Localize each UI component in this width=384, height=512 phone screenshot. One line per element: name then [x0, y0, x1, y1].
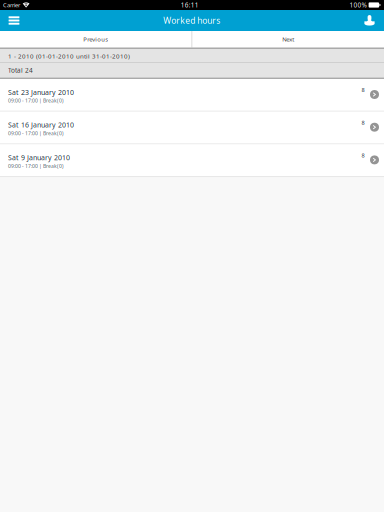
- staticText: Sat 23 January 2010: [8, 87, 74, 97]
- staticText: 8: [361, 151, 364, 159]
- staticText: 16:11: [181, 1, 199, 9]
- button[interactable]: Sat 16 January 2010: [0, 112, 384, 144]
- staticText: 09:00 - 17:00 | Break(0): [8, 162, 64, 169]
- staticText: Sat 16 January 2010: [8, 120, 74, 130]
- staticText: Carrier: [3, 1, 20, 9]
- button[interactable]: Previous: [0, 31, 191, 47]
- button[interactable]: Menu: [1, 10, 26, 31]
- staticText: 8: [361, 86, 364, 94]
- staticText: Worked hours: [163, 15, 220, 26]
- button[interactable]: Sat 23 January 2010: [0, 79, 384, 112]
- button[interactable]: Next: [192, 31, 384, 47]
- staticText: Sat 9 January 2010: [8, 153, 70, 162]
- staticText: 09:00 - 17:00 | Break(0): [8, 97, 64, 104]
- staticText: 1 - 2010 (01-01-2010 until 31-01-2010): [8, 52, 130, 60]
- staticText: 09:00 - 17:00 | Break(0): [8, 130, 64, 137]
- button[interactable]: Account: [357, 10, 382, 31]
- staticText: Previous: [83, 35, 108, 43]
- staticText: Next: [282, 35, 294, 43]
- button[interactable]: Sat 9 January 2010: [0, 144, 384, 177]
- staticText: 8: [361, 119, 364, 126]
- staticText: 100%: [350, 1, 367, 9]
- staticText: Total 24: [8, 66, 33, 75]
